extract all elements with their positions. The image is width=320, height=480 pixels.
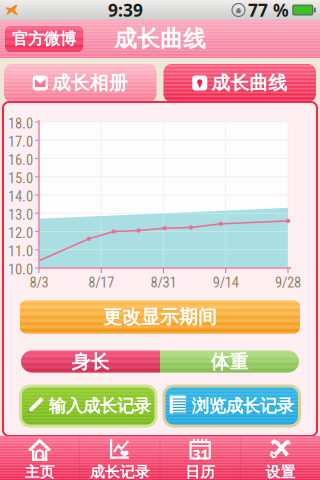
button[interactable]: 设置 [241,436,320,480]
staticText: 9:39 [108,0,143,21]
staticText: 成长曲线 [114,25,206,53]
staticText: 77 % [248,0,289,21]
button[interactable]: 输入成长记录 [19,384,157,427]
staticText: 18.0 [8,115,33,132]
button[interactable]: 成长曲线 [163,64,316,102]
staticText: 浏览成长记录 [192,395,294,417]
button[interactable]: 体重 [160,350,299,372]
staticText: 更改显示期间 [103,305,217,328]
staticText: 8/31 [150,274,176,291]
staticText: 成长记录 [90,463,150,480]
staticText: 16.0 [8,151,33,169]
staticText: 17.0 [8,133,33,150]
staticText: 12.0 [8,224,33,242]
staticText: 10.0 [8,261,33,278]
button[interactable]: 成长记录 [80,436,159,480]
button[interactable]: 主页 [0,436,79,480]
staticText: 9/28 [275,274,301,291]
staticText: 主页 [25,463,55,480]
staticText: 日历 [185,463,215,480]
staticText: 8/3 [29,274,48,291]
button[interactable]: 官方微博 [0,26,83,52]
button[interactable]: 31 [160,436,240,480]
staticText: 官方微博 [12,29,76,49]
staticText: 身长 [71,350,109,372]
button[interactable]: 更改显示期间 [3,300,317,333]
staticText: 设置 [265,463,295,480]
staticText: 13.0 [8,206,33,223]
staticText: 8/17 [88,274,114,291]
staticText: 体重 [210,350,248,372]
staticText: 9/14 [213,274,239,291]
button[interactable]: 身长 [21,350,160,372]
button[interactable]: 浏览成长记录 [162,384,301,427]
staticText: 31 [192,444,208,464]
staticText: 15.0 [8,170,33,187]
staticText: 14.0 [8,188,33,205]
button[interactable]: 成长相册 [4,64,156,102]
staticText: 11.0 [8,243,33,260]
staticText: 输入成长记录 [49,395,151,417]
staticText: 成长相册 [52,71,128,94]
staticText: 成长曲线 [211,71,287,94]
